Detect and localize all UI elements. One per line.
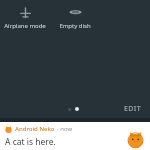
- staticText: · now: [57, 125, 73, 133]
- staticText: EDIT: [124, 104, 142, 114]
- button[interactable]: Empty dish: [50, 2, 100, 33]
- staticText: Empty dish: [59, 22, 91, 30]
- other: Airplane mode: [20, 7, 31, 18]
- other: Empty dish: [69, 6, 82, 19]
- button[interactable]: Airplane mode: [0, 2, 50, 33]
- button[interactable]: Android Neko: [0, 122, 150, 150]
- button[interactable]: EDIT: [120, 102, 146, 116]
- staticText: Airplane mode: [4, 22, 46, 30]
- staticText: A cat is here.: [5, 136, 56, 148]
- staticText: Android Neko: [15, 125, 55, 133]
